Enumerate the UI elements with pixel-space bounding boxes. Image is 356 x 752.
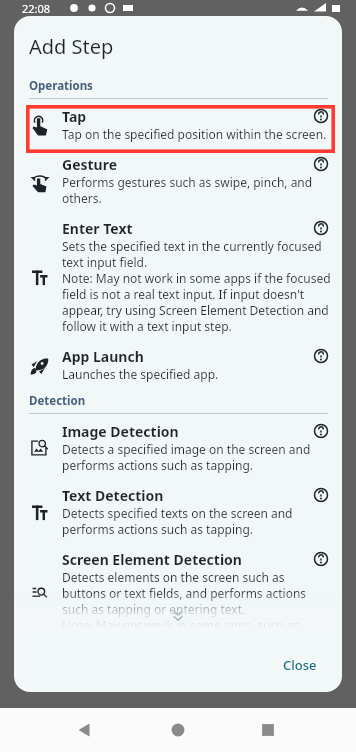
button[interactable]: Text Detection bbox=[26, 484, 335, 548]
button[interactable]: Enter Text bbox=[26, 217, 335, 345]
staticText: Operations bbox=[29, 78, 93, 94]
staticText: Detection bbox=[29, 393, 86, 409]
staticText: Tap on the specified position within the… bbox=[62, 126, 327, 142]
staticText: App Launch bbox=[62, 347, 144, 366]
button[interactable]: Recents bbox=[254, 716, 282, 744]
staticText: Screen Element Detection bbox=[62, 550, 242, 569]
staticText: Tap bbox=[62, 107, 87, 126]
staticText: Detects specified texts on the screen an… bbox=[62, 505, 331, 537]
button[interactable]: Close bbox=[271, 648, 329, 682]
button[interactable]: Help bbox=[311, 154, 331, 174]
staticText: Close bbox=[283, 656, 317, 674]
staticText: Enter Text bbox=[62, 219, 133, 238]
staticText: 22:08 bbox=[22, 1, 51, 16]
button[interactable]: App Launch bbox=[26, 345, 335, 393]
button[interactable]: Help bbox=[311, 218, 331, 238]
staticText: Detects a specified image on the screen … bbox=[62, 441, 331, 473]
staticText: Text Detection bbox=[62, 486, 164, 505]
button[interactable]: Help bbox=[311, 549, 331, 569]
button[interactable]: Help bbox=[311, 346, 331, 366]
staticText: Gesture bbox=[62, 155, 118, 174]
staticText: Launches the specified app. bbox=[62, 366, 219, 382]
button[interactable]: Home bbox=[164, 716, 192, 744]
button[interactable]: Image Detection bbox=[26, 420, 335, 484]
button[interactable]: Screen Element Detection bbox=[26, 548, 335, 638]
staticText: Image Detection bbox=[62, 422, 179, 441]
button[interactable]: Help bbox=[311, 106, 331, 126]
button[interactable]: Gesture bbox=[26, 153, 335, 217]
button[interactable]: Help bbox=[311, 421, 331, 441]
staticText: Sets the specified text in the currently… bbox=[62, 238, 331, 334]
staticText: Add Step bbox=[29, 33, 114, 60]
button[interactable]: Help bbox=[311, 485, 331, 505]
button[interactable]: Back bbox=[71, 716, 99, 744]
staticText: Detects elements on the screen such as b… bbox=[62, 569, 331, 627]
button[interactable]: Tap bbox=[26, 105, 335, 153]
staticText: Performs gestures such as swipe, pinch, … bbox=[62, 174, 331, 206]
